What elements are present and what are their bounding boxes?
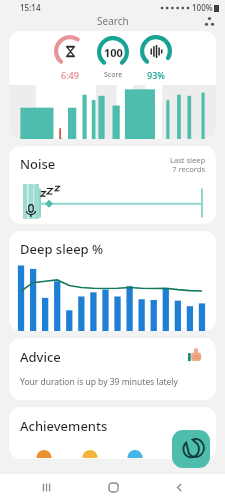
staticText: Deep sleep % bbox=[20, 240, 104, 258]
staticText: Score bbox=[104, 70, 123, 80]
staticText: 100% bbox=[192, 2, 213, 13]
button[interactable]: Deep sleep % bbox=[9, 231, 216, 331]
staticText: 15:14 bbox=[20, 2, 41, 13]
staticText: 100 bbox=[104, 45, 123, 60]
button[interactable]: Achievements bbox=[9, 407, 216, 459]
button[interactable]: 6:49 bbox=[9, 31, 216, 139]
button[interactable]: Noise bbox=[9, 146, 216, 224]
button[interactable]: More options bbox=[204, 16, 215, 27]
staticText: Achievements bbox=[20, 417, 108, 435]
staticText: 93% bbox=[147, 69, 165, 81]
staticText: 6:49 bbox=[61, 69, 79, 81]
button[interactable]: Back bbox=[158, 474, 200, 500]
button[interactable]: Advice bbox=[9, 338, 216, 400]
staticText: Advice bbox=[20, 348, 61, 366]
staticText: Last sleep 7 records bbox=[170, 155, 205, 174]
staticText: Noise bbox=[20, 155, 56, 173]
staticText: Search bbox=[97, 14, 129, 28]
button[interactable]: Start sleep tracking bbox=[172, 430, 210, 468]
button[interactable]: Home bbox=[92, 474, 134, 500]
staticText: Your duration is up by 39 minutes lately bbox=[20, 376, 178, 388]
button[interactable]: Recent apps bbox=[25, 474, 67, 500]
